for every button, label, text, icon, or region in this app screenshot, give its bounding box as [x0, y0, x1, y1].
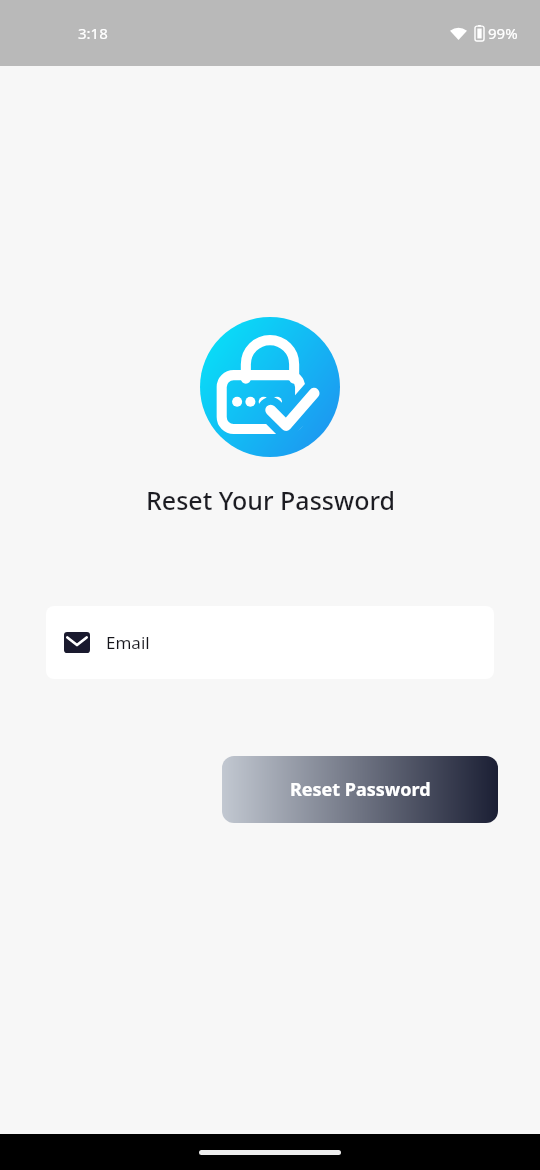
staticText: 3:18 — [78, 23, 108, 43]
staticText: 99% — [488, 23, 518, 43]
staticText: Email — [106, 631, 150, 654]
staticText: Reset Your Password — [146, 483, 395, 517]
button[interactable]: Reset Password — [222, 756, 498, 823]
staticText: Reset Password — [290, 777, 431, 802]
button[interactable]: Email — [46, 606, 494, 679]
other: Email — [64, 632, 90, 653]
